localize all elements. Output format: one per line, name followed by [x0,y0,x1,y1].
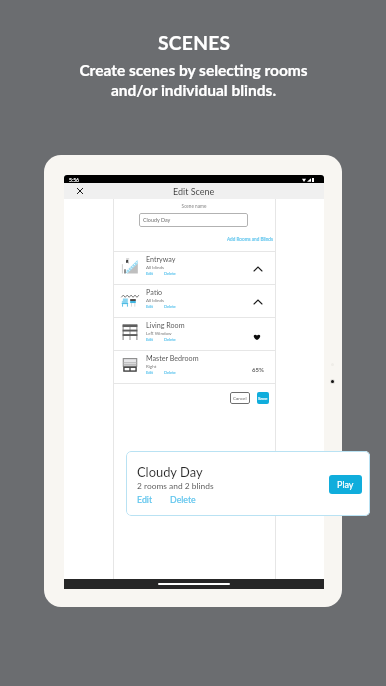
staticText: Scene name [113,203,275,209]
staticText: SCENES [158,31,231,54]
button[interactable]: Edit [146,304,153,309]
staticText: Cloudy Day [137,464,203,479]
staticText: Cancel [233,395,247,401]
staticText: Save [258,395,268,401]
button[interactable]: Delete [164,271,176,276]
button[interactable]: Delete [164,370,176,375]
staticText: Add Rooms and Blinds [227,236,274,242]
button[interactable]: Living Room [113,318,276,350]
staticText: Cloudy Day [143,217,171,223]
staticText: All blinds [146,298,164,303]
button[interactable]: Collapse section [251,262,264,275]
staticText: Edit Scene [173,186,215,197]
button[interactable]: Close [74,185,86,197]
button[interactable]: Collapse section [251,295,264,308]
staticText: Right [146,364,157,369]
button[interactable]: Edit [146,271,153,276]
staticText: 2 rooms and 2 blinds [137,481,214,491]
staticText: 5:56 [69,177,79,183]
staticText: Create scenes by selecting rooms and/or … [79,61,308,100]
button[interactable]: Save [257,392,269,404]
button[interactable]: Patio [113,285,276,317]
button[interactable]: Play [329,475,362,494]
button[interactable]: Edit [137,494,153,505]
staticText: Master Bedroom [146,354,199,363]
staticText: Patio [146,288,163,297]
button[interactable]: Cloudy Day [139,213,248,227]
button[interactable]: Master Bedroom [113,351,276,383]
button[interactable]: Add Rooms and Blinds [225,234,276,244]
button[interactable]: Cloudy Day [126,451,370,516]
staticText: All blinds [146,265,164,270]
staticText: Left Window [146,331,172,336]
button[interactable]: Delete [164,304,176,309]
button[interactable]: Delete [170,494,196,505]
staticText: Living Room [146,321,185,330]
button[interactable]: Edit [146,337,153,342]
button[interactable]: Entryway [113,252,276,284]
staticText: Play [337,479,354,490]
button[interactable]: Edit [146,370,153,375]
button[interactable]: Favorite [250,330,263,343]
staticText: 65% [252,366,264,373]
staticText: Entryway [146,255,176,264]
button[interactable]: Delete [164,337,176,342]
button[interactable]: Cancel [230,392,250,404]
